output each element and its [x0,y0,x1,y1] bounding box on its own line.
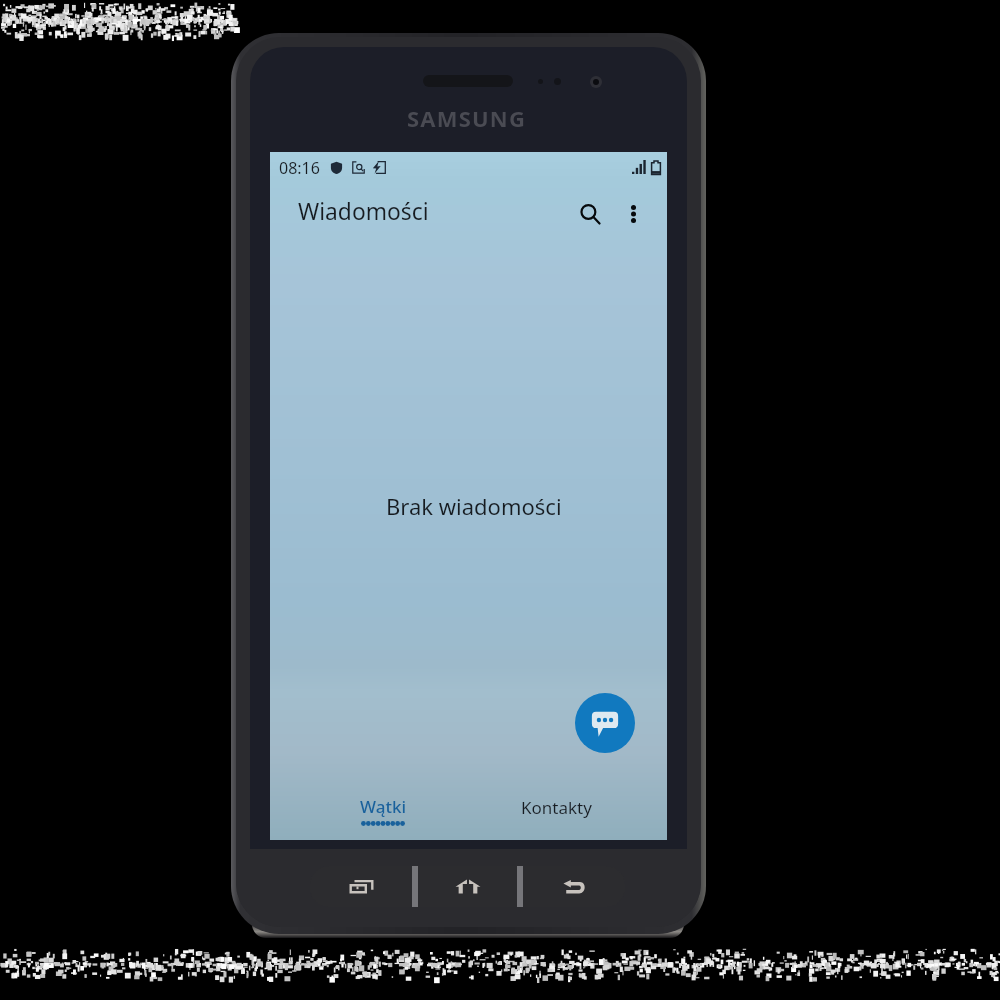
button[interactable]: Kontakty [488,796,624,844]
button[interactable]: Wątki [315,795,451,843]
staticText: SAMSUNG [407,103,527,133]
staticText: Wiadomości [298,196,429,227]
button[interactable]: Back [523,866,625,907]
button[interactable]: New conversation [575,693,635,753]
staticText: Kontakty [521,796,592,819]
staticText: Wątki [360,795,406,818]
button[interactable]: Home [418,866,517,907]
button[interactable]: Search [569,193,611,235]
staticText: Brak wiadomości [386,491,562,521]
button[interactable]: Recent apps [310,866,412,907]
staticText: 08:16 [279,157,320,179]
button[interactable]: More options [612,193,654,235]
